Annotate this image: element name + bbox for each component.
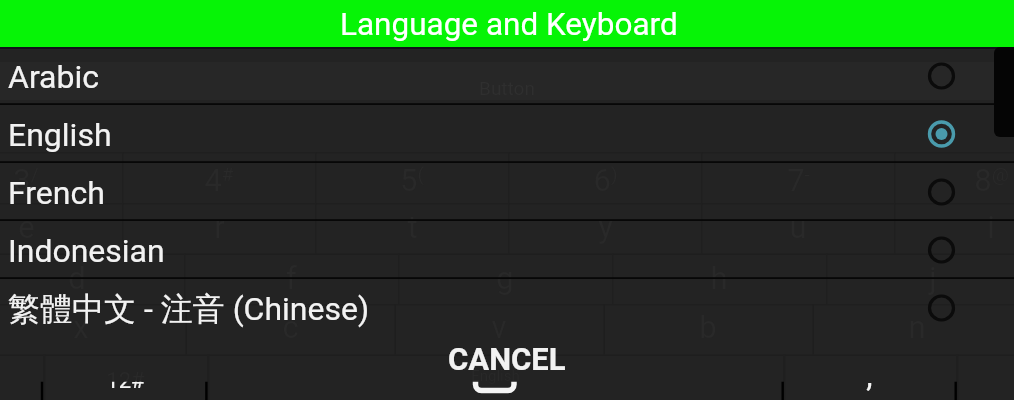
button[interactable]: CANCEL [0, 337, 1014, 381]
staticText: h [710, 260, 728, 296]
staticText: English [471, 367, 520, 385]
staticText: u [789, 209, 807, 245]
staticText: English [8, 116, 112, 154]
button[interactable]: English [0, 105, 1014, 163]
staticText: r [214, 209, 225, 245]
staticText: d [68, 260, 86, 296]
staticText: c [282, 309, 299, 345]
staticText: Indonesian [8, 232, 165, 270]
staticText: 3/ [13, 162, 39, 198]
staticText: , [866, 356, 873, 394]
button[interactable]: 繁體中文 - 注音 (Chinese) [0, 279, 1014, 337]
staticText: 12# [106, 368, 145, 394]
staticText: y [598, 209, 613, 245]
staticText: , [866, 356, 873, 394]
staticText: Button [0, 77, 1014, 99]
staticText: Arabic [8, 58, 99, 96]
staticText: j [929, 260, 937, 296]
staticText: 12# [106, 368, 145, 394]
staticText: x [73, 309, 89, 345]
button[interactable]: Indonesian [0, 221, 1014, 279]
staticText: 7- [787, 162, 810, 198]
staticText: 8@ [974, 162, 1009, 198]
staticText: t [407, 209, 418, 245]
staticText: i [987, 209, 995, 245]
button[interactable]: Arabic [0, 47, 1014, 105]
staticText: e [18, 209, 35, 245]
staticText: French [8, 174, 105, 212]
button[interactable]: French [0, 163, 1014, 221]
staticText: CANCEL [448, 341, 566, 377]
staticText: 6) [593, 162, 618, 198]
staticText: f [286, 260, 297, 296]
staticText: Language and Keyboard [340, 6, 678, 43]
staticText: g [496, 260, 514, 296]
staticText: 4# [204, 162, 234, 198]
staticText: 繁體中文 - 注音 (Chinese) [8, 289, 370, 329]
staticText: 5( [400, 162, 424, 198]
